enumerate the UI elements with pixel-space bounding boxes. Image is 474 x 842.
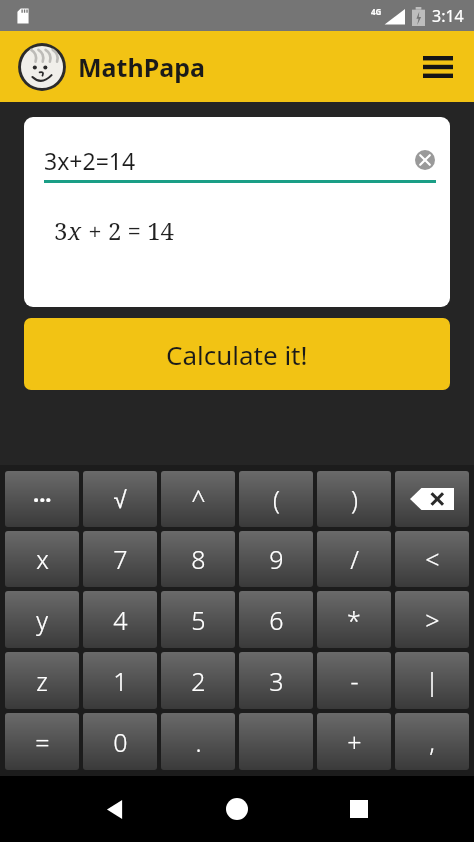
button[interactable]: 7 (83, 531, 157, 587)
button[interactable]: 4 (83, 591, 157, 648)
staticText: y (36, 603, 48, 637)
button[interactable]: ··· (5, 471, 79, 527)
button[interactable]: / (317, 531, 391, 587)
staticText: Calculate it! (166, 337, 308, 372)
button[interactable]: 5 (161, 591, 235, 648)
staticText: ( (273, 482, 280, 516)
staticText: ··· (33, 484, 52, 514)
staticText: ^ (191, 482, 206, 516)
staticText: * (347, 603, 361, 637)
staticText: 3 (269, 664, 284, 698)
staticText: x (68, 214, 82, 247)
button[interactable]: 2 (161, 652, 235, 709)
staticText: ) (351, 482, 358, 516)
staticText: 7 (113, 542, 128, 576)
button[interactable]: - (317, 652, 391, 709)
staticText: 8 (191, 542, 206, 576)
button[interactable]: x (5, 531, 79, 587)
button[interactable]: ( (239, 471, 313, 527)
staticText: MathPapa (78, 50, 205, 84)
staticText: + 2 = 14 (82, 214, 175, 247)
button[interactable]: = (5, 713, 79, 770)
staticText: 3 (54, 214, 68, 247)
button[interactable]: √ (83, 471, 157, 527)
staticText: . (195, 725, 202, 759)
staticText: x (36, 542, 49, 576)
button[interactable]: > (395, 591, 469, 648)
button[interactable]: 3x+2=14 (24, 117, 450, 307)
button[interactable]: z (5, 652, 79, 709)
button[interactable]: 8 (161, 531, 235, 587)
button[interactable]: * (317, 591, 391, 648)
staticText: z (36, 664, 48, 698)
button[interactable]: 0 (83, 713, 157, 770)
staticText: 0 (113, 725, 128, 759)
button[interactable]: < (395, 531, 469, 587)
button[interactable]: y (5, 591, 79, 648)
staticText: + (347, 725, 362, 759)
button[interactable]: | (395, 652, 469, 709)
button[interactable]: Menu (416, 45, 460, 89)
button[interactable]: ) (317, 471, 391, 527)
button[interactable]: . (161, 713, 235, 770)
staticText: < (425, 542, 440, 576)
button[interactable] (239, 713, 313, 770)
button[interactable]: Home (176, 776, 298, 842)
staticText: 4 (113, 603, 128, 637)
button[interactable]: Clear (412, 147, 438, 173)
staticText: = (35, 725, 50, 759)
staticText: - (350, 664, 359, 698)
button[interactable]: Back (54, 776, 176, 842)
staticText: 3:14 (432, 5, 464, 27)
staticText: 2 (191, 664, 206, 698)
staticText: | (425, 664, 439, 698)
staticText: 4G (371, 6, 382, 17)
button[interactable]: Backspace (395, 471, 469, 527)
staticText: 5 (191, 603, 206, 637)
button[interactable]: Calculate it! (24, 318, 450, 390)
button[interactable]: 9 (239, 531, 313, 587)
staticText: 9 (269, 542, 284, 576)
button[interactable]: 3 (239, 652, 313, 709)
button[interactable]: ^ (161, 471, 235, 527)
staticText: , (429, 725, 435, 759)
staticText: 6 (269, 603, 284, 637)
staticText: √ (113, 486, 127, 513)
button[interactable]: , (395, 713, 469, 770)
button[interactable]: 1 (83, 652, 157, 709)
staticText: / (350, 542, 359, 576)
button[interactable]: + (317, 713, 391, 770)
staticText: 1 (113, 664, 128, 698)
button[interactable]: Recent apps (298, 776, 420, 842)
staticText: 3x+2=14 (44, 145, 136, 176)
button[interactable]: 6 (239, 591, 313, 648)
staticText: > (425, 603, 440, 637)
